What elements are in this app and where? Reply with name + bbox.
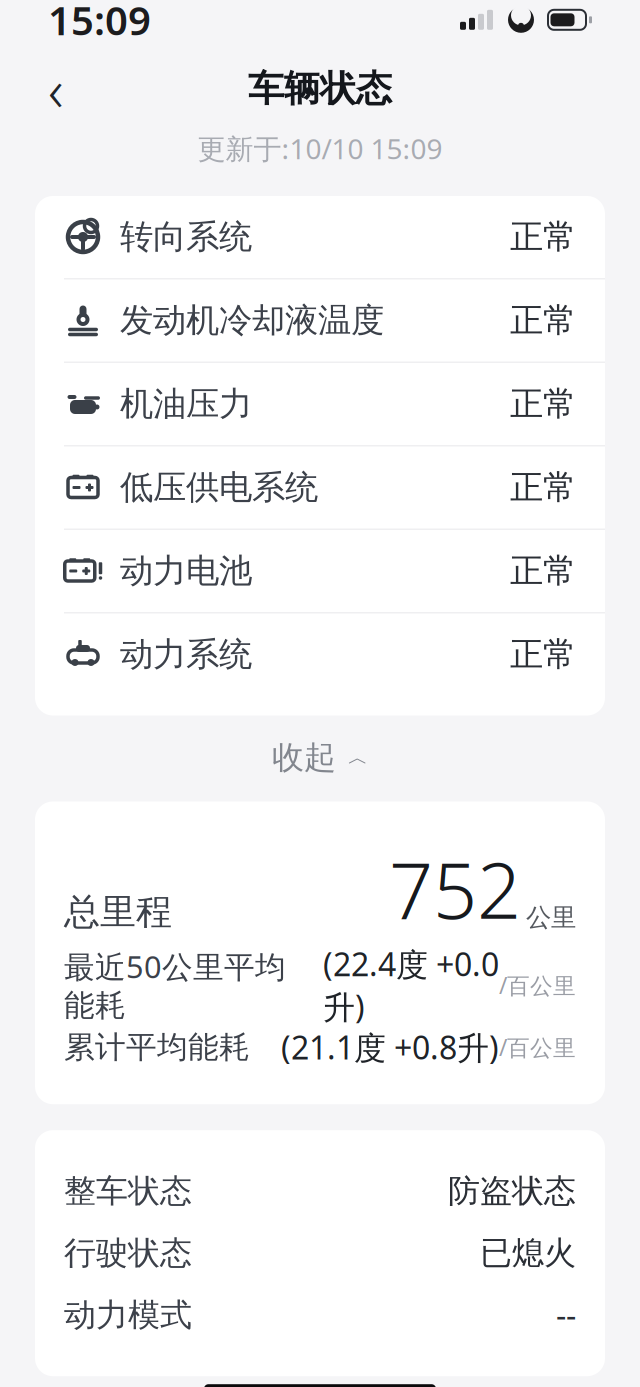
button[interactable]: 收起 xyxy=(0,727,640,787)
staticText: 转向系统 xyxy=(120,216,252,257)
staticText: 动力电池 xyxy=(120,550,252,591)
button[interactable]: 动力电池 xyxy=(35,530,605,612)
button[interactable]: 机油压力 xyxy=(35,363,605,445)
button[interactable]: 发动机冷却液温度 xyxy=(35,279,605,361)
staticText: 最近50公里平均能耗 xyxy=(64,946,286,1024)
staticText: 总里程 xyxy=(64,890,172,934)
staticText: 更新于:10/10 15:09 xyxy=(197,130,442,167)
staticText: 机油压力 xyxy=(120,383,252,424)
staticText: 行驶状态 xyxy=(64,1233,192,1273)
button[interactable]: 动力系统 xyxy=(35,613,605,695)
staticText: 动力系统 xyxy=(120,634,252,675)
staticText: ︿ xyxy=(348,745,368,770)
staticText: 低压供电系统 xyxy=(120,467,318,508)
button[interactable]: 转向系统 xyxy=(35,196,605,278)
staticText: 15:09 xyxy=(48,0,151,46)
staticText: /百公里 xyxy=(499,1032,576,1062)
staticText: 收起 xyxy=(272,738,336,777)
staticText: 正常 xyxy=(510,383,576,424)
staticText: 正常 xyxy=(510,300,576,341)
staticText: /百公里 xyxy=(499,970,576,1000)
staticText: 动力模式 xyxy=(64,1295,192,1335)
staticText: 公里 xyxy=(526,902,576,933)
staticText: ‹ xyxy=(48,50,64,128)
staticText: 正常 xyxy=(510,467,576,508)
staticText: 整车状态 xyxy=(64,1171,192,1211)
staticText: -- xyxy=(556,1294,576,1336)
staticText: 已熄火 xyxy=(480,1233,576,1273)
button[interactable]: 低压供电系统 xyxy=(35,446,605,528)
staticText: 车辆状态 xyxy=(248,67,392,111)
staticText: 发动机冷却液温度 xyxy=(120,300,384,341)
staticText: 正常 xyxy=(510,634,576,675)
staticText: (22.4度 +0.0升) xyxy=(323,943,499,1028)
staticText: 正常 xyxy=(510,216,576,257)
staticText: 正常 xyxy=(510,550,576,591)
staticText: 防盗状态 xyxy=(448,1171,576,1211)
button[interactable]: Back xyxy=(28,61,84,117)
staticText: (21.1度 +0.8升) xyxy=(281,1026,499,1068)
staticText: 累计平均能耗 xyxy=(64,1028,250,1066)
staticText: 752 xyxy=(389,837,521,940)
